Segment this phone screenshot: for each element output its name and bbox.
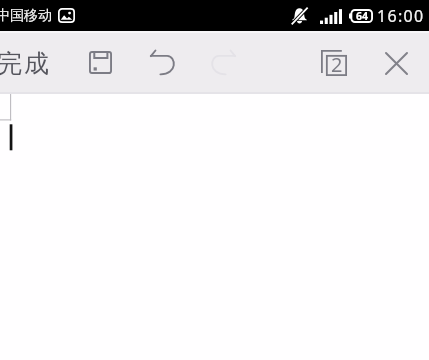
staticText: 64	[356, 9, 369, 23]
button[interactable]: 完成	[0, 32, 50, 95]
staticText: 2	[331, 51, 343, 77]
button[interactable]: Save	[76, 31, 124, 94]
staticText: 中国移动	[0, 7, 52, 25]
button[interactable]: Pages	[310, 31, 358, 94]
button[interactable]: Undo	[139, 31, 187, 94]
staticText: 16:00	[377, 5, 425, 27]
button[interactable]: Close	[372, 31, 420, 94]
staticText: 完成	[0, 48, 50, 79]
